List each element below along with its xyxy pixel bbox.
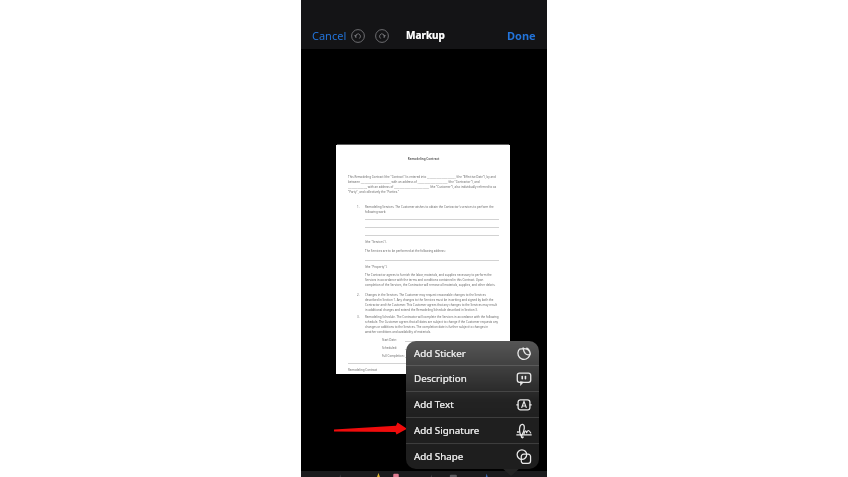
staticText: Scheduled: xyxy=(382,346,405,350)
staticText: Remodeling Services. The Customer wishes… xyxy=(365,205,499,214)
staticText: Changes in the Services. The Customer ma… xyxy=(365,293,499,312)
staticText: Done xyxy=(507,28,536,43)
button[interactable]: Undo xyxy=(350,28,365,43)
staticText: The Contractor agrees to furnish the lab… xyxy=(365,273,499,287)
staticText: Add Sticker xyxy=(414,347,466,360)
staticText: 3. xyxy=(357,315,365,319)
staticText: This Remodeling Contract (the "Contract"… xyxy=(348,175,499,194)
staticText: Add Signature xyxy=(414,424,480,437)
button[interactable]: Add Shape xyxy=(406,444,539,469)
staticText: Cancel xyxy=(312,28,347,43)
staticText: Description xyxy=(414,372,467,385)
staticText: Remodeling Contract xyxy=(348,157,499,161)
staticText: Full Completion: xyxy=(382,354,405,358)
staticText: 1. xyxy=(357,205,365,209)
staticText: The Services are to be performed at the … xyxy=(365,249,446,253)
staticText: (the "Services"). xyxy=(365,240,387,244)
staticText: (the "Property"). xyxy=(365,265,388,269)
staticText: Add Shape xyxy=(414,450,464,463)
staticText: Markup xyxy=(406,28,445,42)
button[interactable]: Description xyxy=(406,366,539,391)
staticText: 2. xyxy=(357,293,365,297)
staticText: Add Text xyxy=(414,398,454,411)
button[interactable]: Cancel xyxy=(312,23,347,48)
button[interactable]: Done xyxy=(507,23,536,48)
staticText: Remodeling Schedule. The Contractor will… xyxy=(365,315,499,334)
button[interactable]: Add Sticker xyxy=(406,341,539,365)
button[interactable]: Redo xyxy=(374,28,389,43)
button[interactable]: Add Text xyxy=(406,392,539,417)
button[interactable]: Add Signature xyxy=(406,418,539,443)
staticText: Start Date: xyxy=(382,338,405,342)
staticText: Remodeling Contract xyxy=(348,368,378,372)
